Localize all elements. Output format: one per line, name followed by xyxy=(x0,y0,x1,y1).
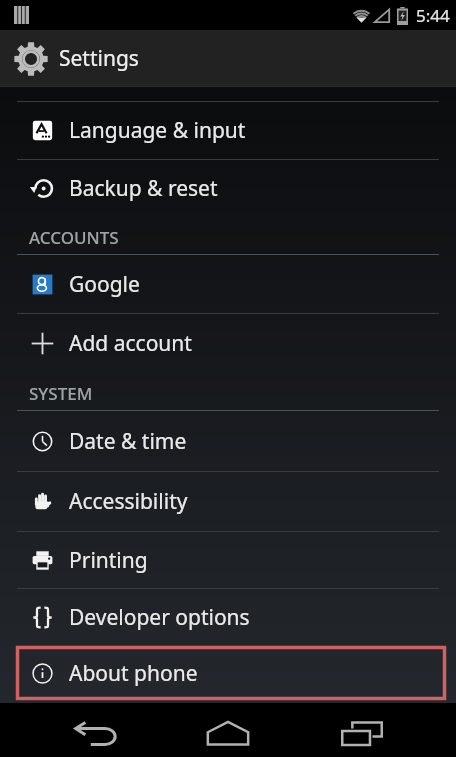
button[interactable]: Recent apps xyxy=(312,703,412,757)
staticText: Date & time xyxy=(69,427,187,456)
button[interactable]: Language & input xyxy=(0,102,456,159)
button[interactable]: Date & time xyxy=(0,411,456,471)
staticText: Developer options xyxy=(69,603,250,632)
staticText: Printing xyxy=(69,546,148,575)
button[interactable]: Printing xyxy=(0,532,456,588)
staticText: SYSTEM xyxy=(29,382,93,405)
button[interactable]: Developer options xyxy=(0,589,456,646)
staticText: Backup & reset xyxy=(69,174,218,203)
staticText: Accessibility xyxy=(69,487,188,516)
button[interactable]: Accessibility xyxy=(0,472,456,531)
staticText: Add account xyxy=(69,329,192,358)
staticText: Language & input xyxy=(69,116,246,145)
staticText: Google xyxy=(69,270,140,299)
staticText: ACCOUNTS xyxy=(29,226,119,249)
button[interactable]: Google xyxy=(0,255,456,313)
button[interactable]: Back xyxy=(45,703,145,757)
staticText: 5:44 xyxy=(416,4,450,27)
staticText: About phone xyxy=(69,659,198,688)
staticText: Settings xyxy=(59,44,139,73)
button[interactable]: Home xyxy=(178,703,278,757)
button[interactable]: Add account xyxy=(0,314,456,373)
button[interactable]: About phone xyxy=(16,646,446,700)
button[interactable]: Backup & reset xyxy=(0,160,456,217)
